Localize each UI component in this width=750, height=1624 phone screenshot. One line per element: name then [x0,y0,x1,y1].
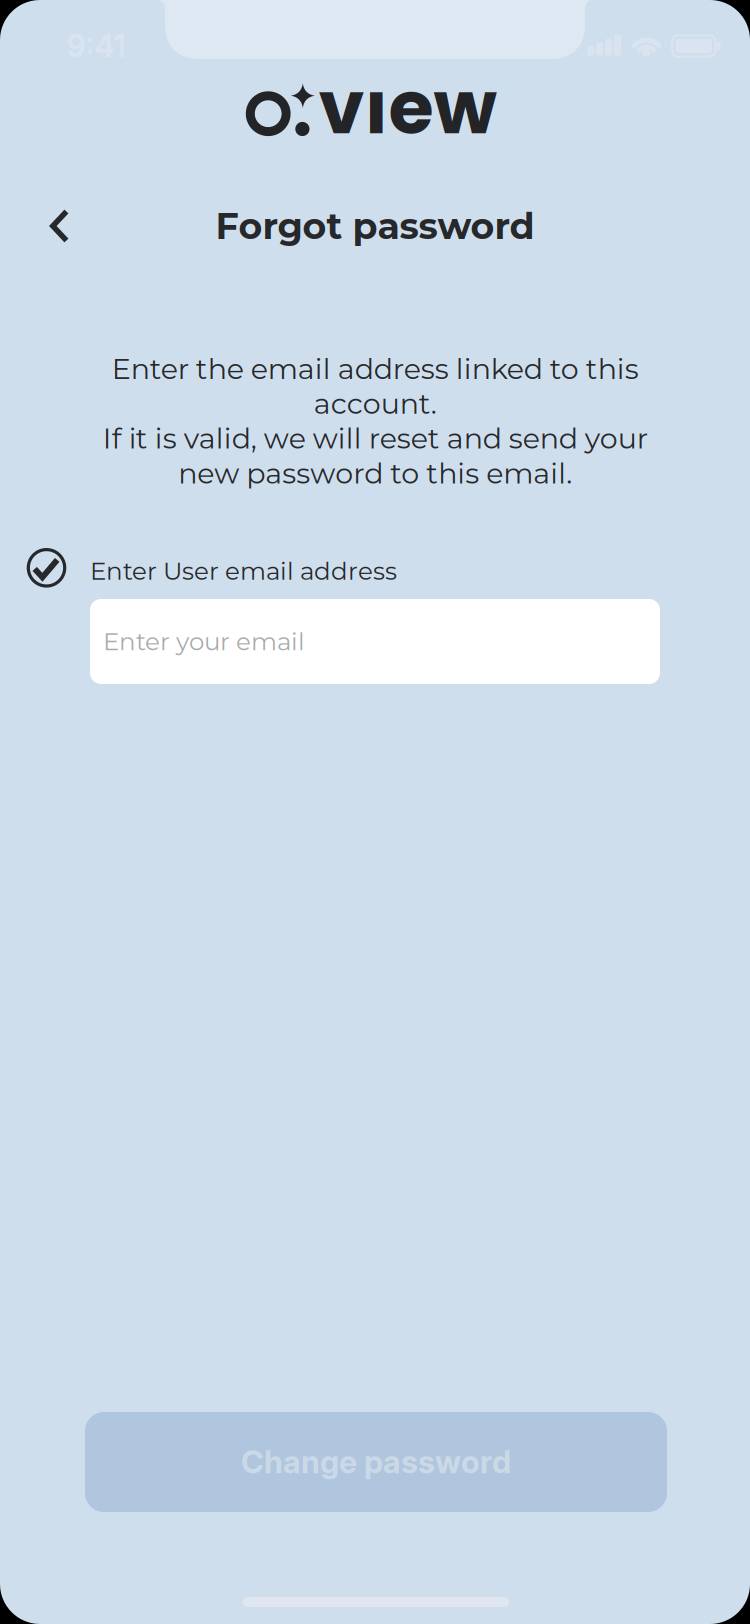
staticText: 9:41 [66,27,125,64]
staticText: Enter User email address [90,556,397,586]
staticText: Enter the email address linked to this a… [102,351,647,490]
staticText: vıew [318,56,497,159]
staticText: Forgot password [215,204,534,248]
staticText: Change password [241,1443,511,1481]
button[interactable]: Change password [85,1412,667,1512]
button[interactable]: Email address selected [27,548,66,588]
button[interactable]: Enter your email [90,599,660,684]
staticText: Enter your email [103,626,305,656]
button[interactable]: Back [39,197,80,254]
